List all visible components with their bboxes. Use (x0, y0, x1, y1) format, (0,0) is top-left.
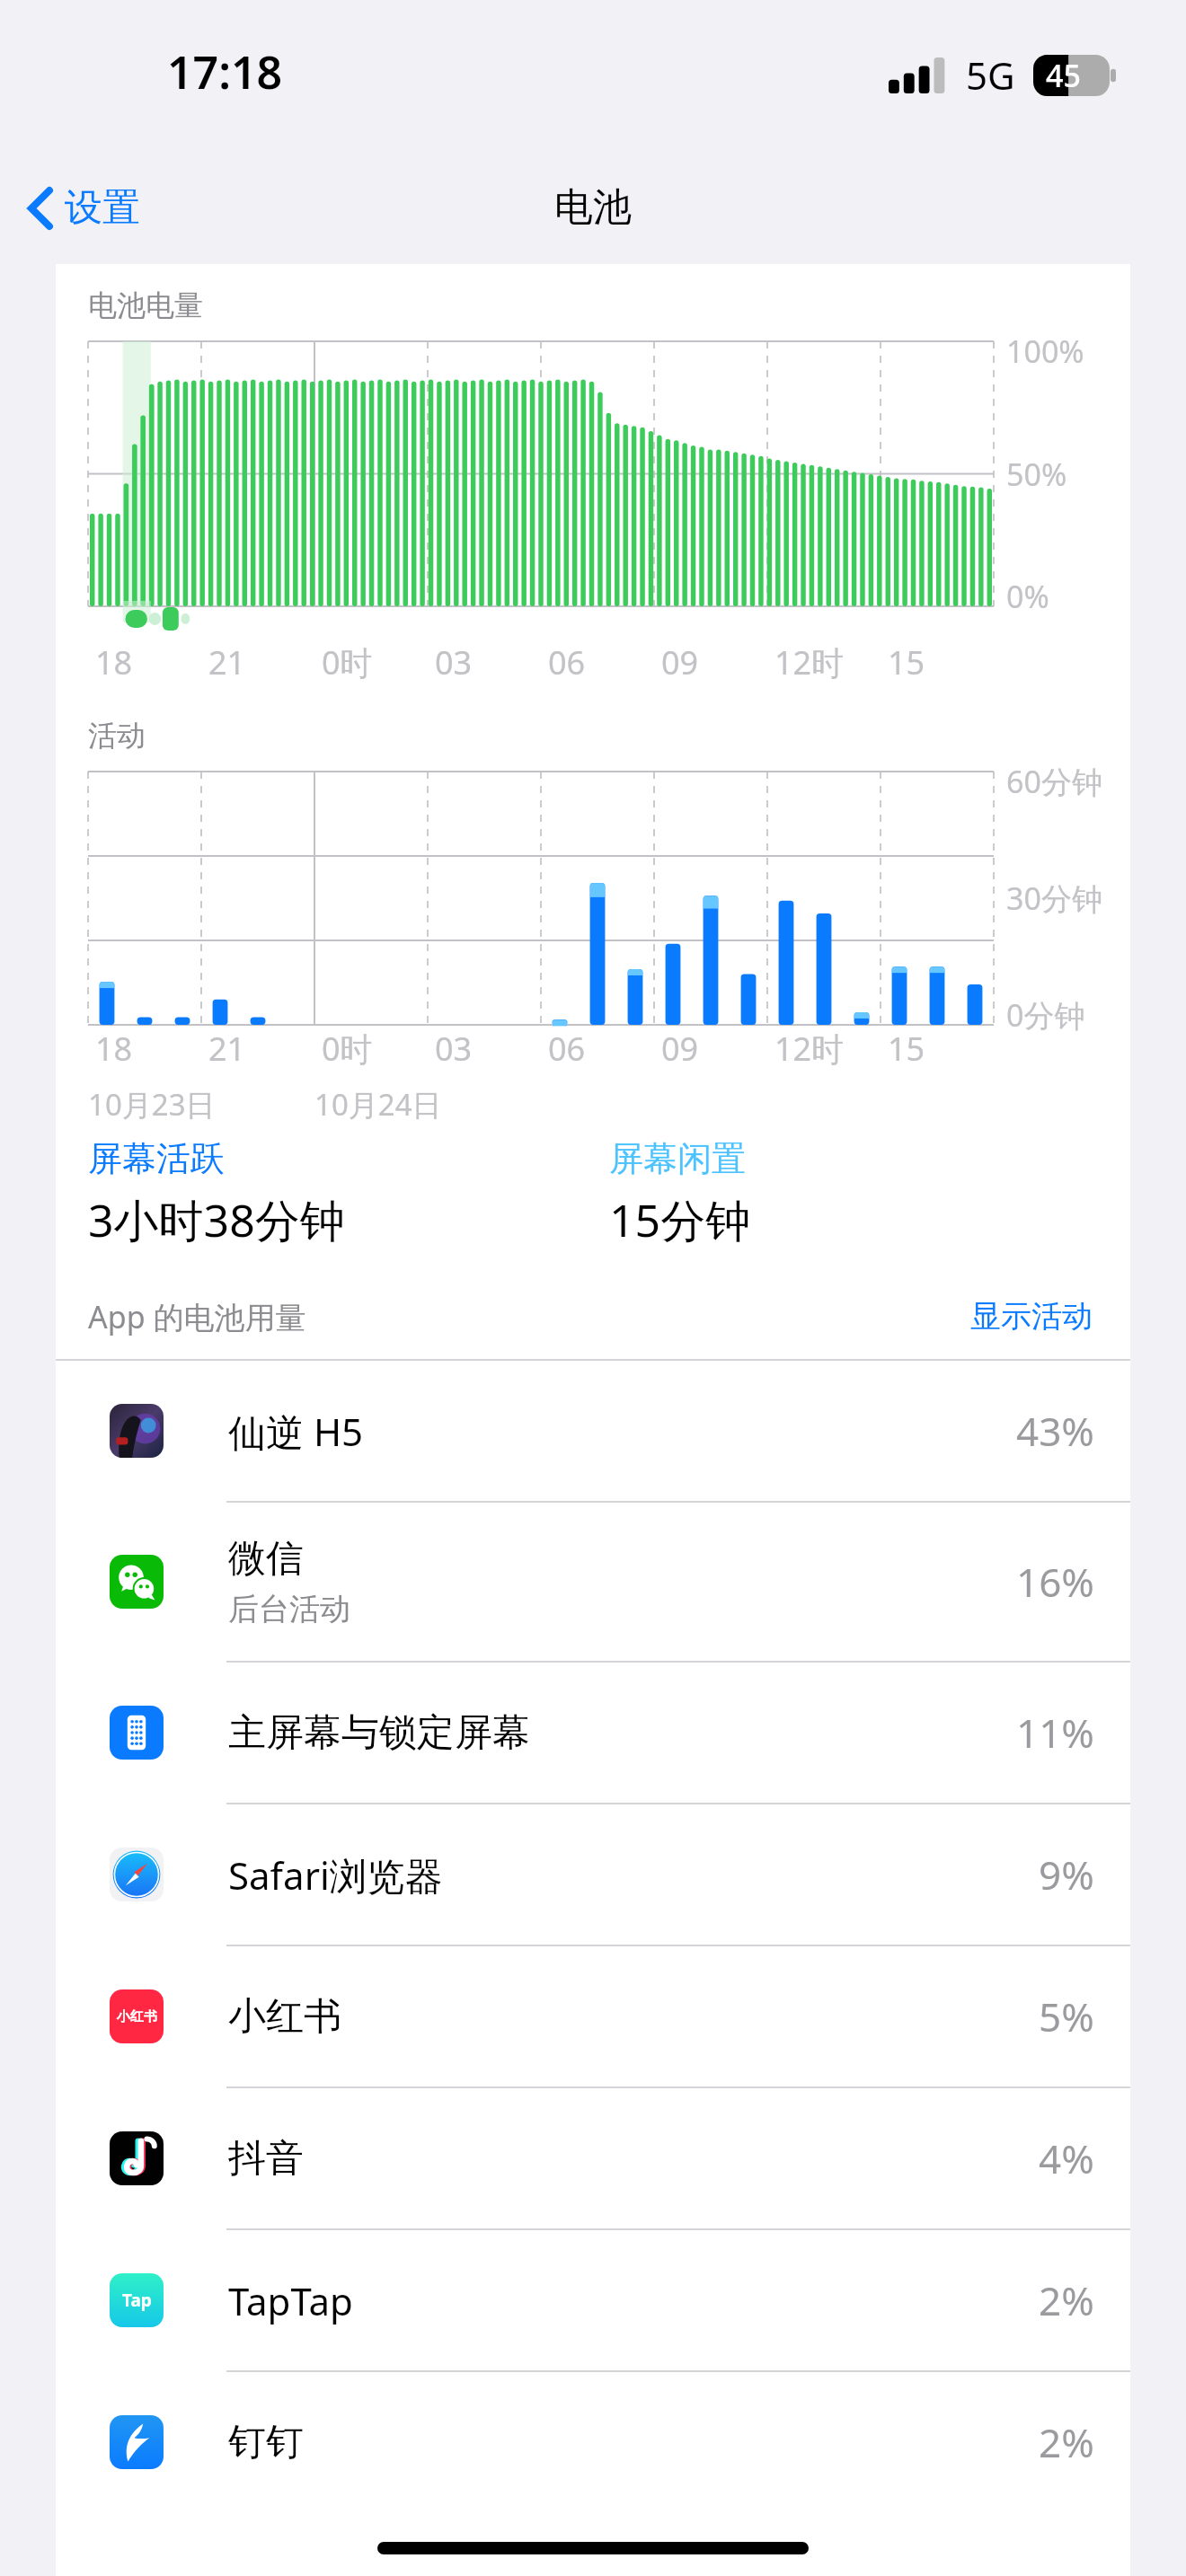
staticText: 18 (95, 1027, 133, 1071)
staticText: 45 (1046, 55, 1081, 96)
button[interactable]: 钉钉 (56, 2372, 1130, 2512)
button[interactable]: 屏幕闲置 (609, 1132, 1130, 1256)
staticText: 钉钉 (228, 2419, 304, 2466)
staticText: 09 (661, 1027, 699, 1071)
staticText: 电池 (554, 183, 632, 232)
staticText: 抖音 (228, 2135, 304, 2183)
staticText: 11% (1016, 1706, 1094, 1760)
button[interactable]: Safari浏览器 (56, 1804, 1130, 1945)
staticText: Safari浏览器 (228, 1849, 443, 1901)
staticText: 17:18 (167, 41, 283, 102)
staticText: 活动 (88, 718, 146, 754)
staticText: Tap (122, 2289, 152, 2312)
staticText: 43% (1016, 1404, 1094, 1458)
button[interactable]: 显示活动 (965, 1292, 1098, 1341)
staticText: 5% (1039, 1989, 1094, 2043)
staticText: 屏幕闲置 (609, 1137, 746, 1180)
staticText: 3小时38分钟 (88, 1189, 345, 1250)
staticText: 5G (966, 49, 1015, 101)
staticText: 60分钟 (1006, 761, 1102, 802)
staticText: 主屏幕与锁定屏幕 (228, 1709, 530, 1757)
staticText: 小红书 (228, 1993, 341, 2041)
staticText: App 的电池用量 (88, 1296, 306, 1337)
staticText: 4% (1039, 2131, 1094, 2185)
staticText: 30分钟 (1006, 878, 1102, 919)
staticText: 2% (1039, 2273, 1094, 2327)
staticText: 18 (95, 640, 133, 684)
staticText: 12时 (774, 640, 845, 684)
staticText: 2% (1039, 2415, 1094, 2469)
staticText: 屏幕活跃 (88, 1137, 225, 1180)
staticText: 15 (888, 640, 925, 684)
staticText: 10月24日 (314, 1084, 442, 1125)
button[interactable]: 仙逆 H5 (56, 1361, 1130, 1501)
button[interactable]: 屏幕活跃 (88, 1132, 609, 1256)
staticText: 微信 (228, 1535, 304, 1583)
staticText: 0时 (322, 640, 373, 684)
staticText: 12时 (774, 1027, 845, 1071)
button[interactable]: Tap (56, 2230, 1130, 2370)
staticText: 后台活动 (228, 1590, 350, 1628)
staticText: 06 (548, 1027, 586, 1071)
staticText: 10月23日 (88, 1084, 216, 1125)
staticText: 21 (208, 640, 246, 684)
button[interactable]: 主屏幕与锁定屏幕 (56, 1663, 1130, 1803)
staticText: 09 (661, 640, 699, 684)
staticText: 小红书 (117, 2008, 157, 2025)
staticText: 9% (1039, 1848, 1094, 1901)
staticText: 0时 (322, 1027, 373, 1071)
staticText: 显示活动 (970, 1297, 1093, 1336)
staticText: 仙逆 H5 (228, 1406, 364, 1457)
staticText: TapTap (228, 2275, 353, 2326)
staticText: 0分钟 (1006, 994, 1085, 1036)
staticText: 03 (435, 1027, 473, 1071)
staticText: 21 (208, 1027, 246, 1071)
button[interactable]: 微信 (56, 1503, 1130, 1661)
staticText: 50% (1006, 454, 1067, 495)
button[interactable]: 抖音 (56, 2088, 1130, 2228)
staticText: 0% (1006, 576, 1049, 617)
button[interactable]: 小红书 (56, 1946, 1130, 2086)
button[interactable]: 设置 (0, 175, 158, 241)
staticText: 06 (548, 640, 586, 684)
staticText: 15 (888, 1027, 925, 1071)
staticText: 电池电量 (88, 287, 203, 323)
staticText: 03 (435, 640, 473, 684)
staticText: 100% (1006, 331, 1084, 372)
staticText: 16% (1016, 1555, 1094, 1609)
staticText: 15分钟 (609, 1189, 751, 1250)
staticText: 设置 (65, 184, 140, 232)
